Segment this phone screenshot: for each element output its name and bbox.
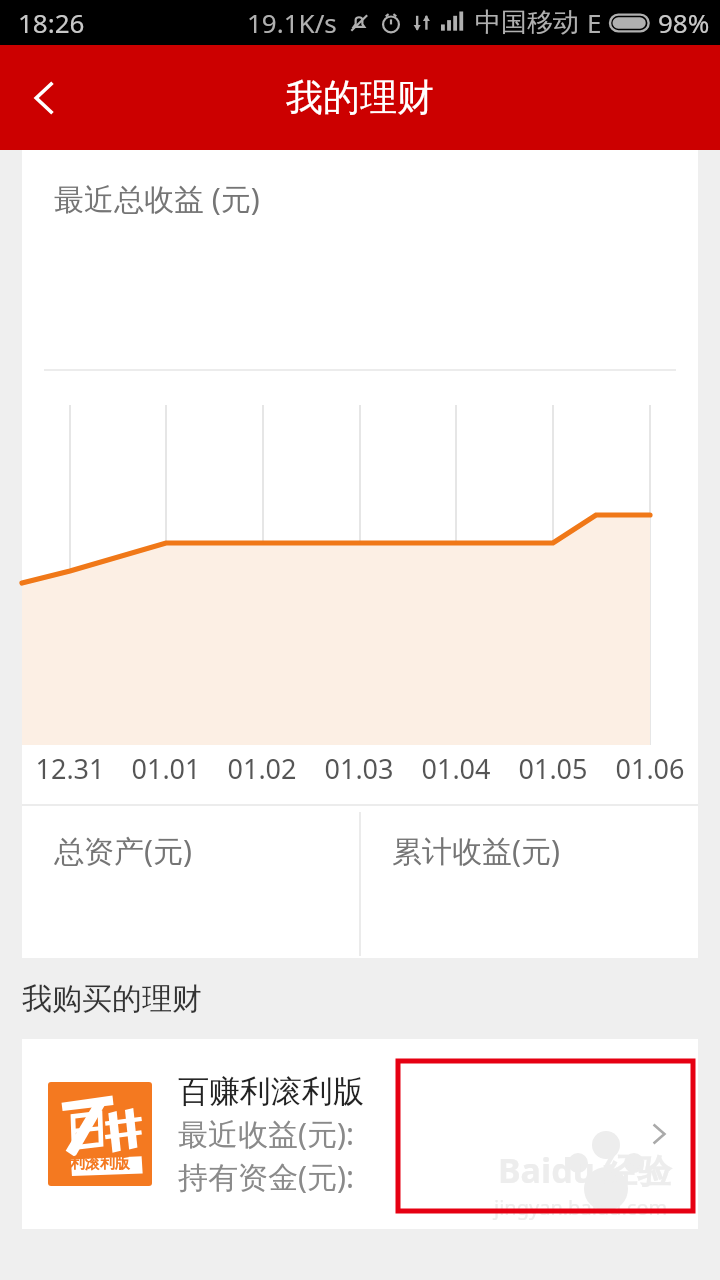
button[interactable]: Baidu 经验 [22,1039,698,1229]
staticText: 18:26 [18,5,85,40]
staticText: Baidu 经验 [498,1147,672,1193]
staticText: 01.06 [615,750,685,787]
staticText: 中国移动 [475,6,579,39]
staticText: 利滚利版 [70,1154,130,1173]
staticText: 19.1K/s [247,5,337,40]
staticText: 01.04 [421,750,491,787]
staticText: 我购买的理财 [22,980,202,1018]
staticText: 最近收益(元): [178,1113,355,1154]
staticText: 百赚利滚利版 [178,1072,364,1111]
staticText: jingyan.baidu.com [494,1194,668,1221]
staticText: 总资产(元) [54,830,192,871]
staticText: 我的理财 [286,74,434,121]
staticText: 01.03 [324,750,394,787]
button[interactable]: 累计收益(元) [360,830,698,871]
staticText: 12.31 [35,750,105,787]
other: Open [642,1117,676,1151]
staticText: 98% [658,5,710,40]
button[interactable]: Back [0,45,90,150]
staticText: E [587,5,602,40]
staticText: 01.02 [227,750,297,787]
staticText: 持有资金(元): [178,1156,355,1197]
staticText: 最近总收益 (元) [54,178,260,219]
button[interactable]: 总资产(元) [22,830,360,871]
staticText: 累计收益(元) [392,830,560,871]
staticText: 01.05 [518,750,588,787]
staticText: 01.01 [131,750,201,787]
